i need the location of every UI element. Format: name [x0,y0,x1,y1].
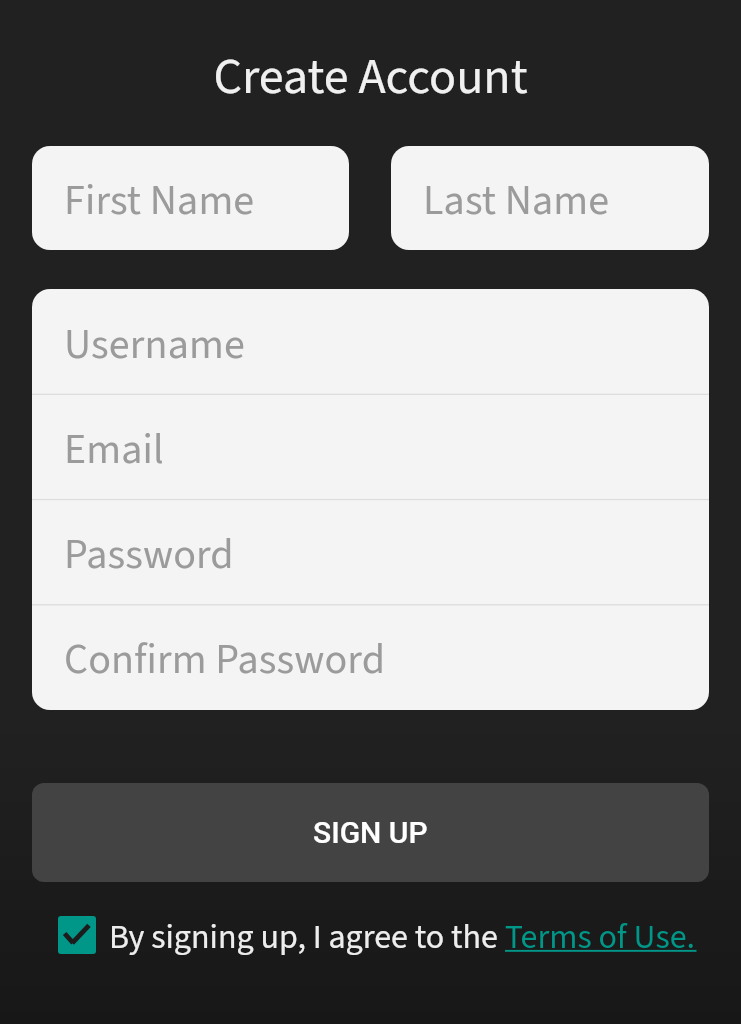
staticText: Username [64,315,245,375]
button[interactable]: Agree to the terms of use [58,916,96,954]
staticText: First Name [64,171,255,231]
staticText: Confirm Password [64,630,386,690]
button[interactable]: First Name [32,146,349,250]
staticText: Last Name [423,171,610,231]
button[interactable]: By signing up, I agree to the Terms of U… [109,913,695,961]
staticText: Create Account [0,42,741,113]
button[interactable]: SIGN UP [32,783,709,882]
staticText: Email [64,420,164,480]
button[interactable]: Last Name [391,146,709,250]
staticText: Password [64,525,234,585]
button[interactable]: Password [32,500,709,605]
button[interactable]: Confirm Password [32,605,709,710]
staticText: By signing up, I agree to the Terms of U… [109,913,695,961]
staticText: SIGN UP [313,815,428,850]
button[interactable]: Email [32,395,709,500]
button[interactable]: Username [32,289,709,395]
